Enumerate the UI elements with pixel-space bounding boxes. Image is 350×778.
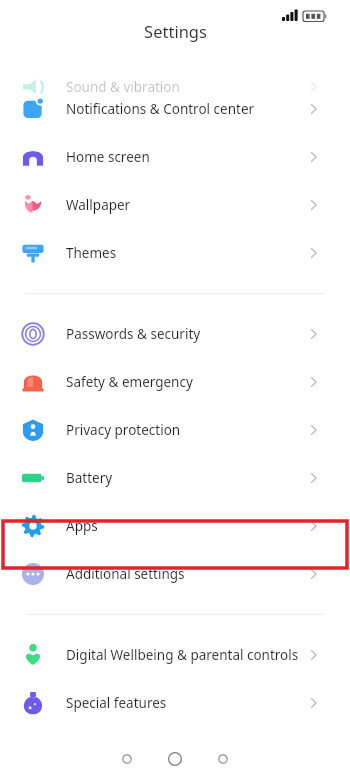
button[interactable]: Special features	[0, 679, 350, 727]
button[interactable]: Passwords & security	[0, 310, 350, 358]
staticText: Home screen	[66, 148, 150, 166]
button[interactable]: Recents	[213, 738, 350, 778]
button[interactable]: Privacy protection	[0, 406, 350, 454]
staticText: Settings	[144, 20, 207, 42]
button[interactable]: Digital Wellbeing & parental controls	[0, 631, 350, 679]
staticText: Safety & emergency	[66, 373, 193, 391]
button[interactable]: Home screen	[0, 133, 350, 181]
button[interactable]: Safety & emergency	[0, 358, 350, 406]
button[interactable]: Back	[0, 738, 137, 778]
staticText: Themes	[66, 244, 117, 262]
staticText: Battery	[66, 469, 113, 487]
staticText: Additional settings	[66, 565, 185, 583]
button[interactable]: Wallpaper	[0, 181, 350, 229]
button[interactable]: Battery	[0, 454, 350, 502]
button[interactable]: Additional settings	[0, 550, 350, 598]
staticText: Apps	[66, 517, 98, 535]
staticText: Notifications & Control center	[66, 100, 255, 118]
button[interactable]: Notifications & Control center	[0, 85, 350, 133]
staticText: Wallpaper	[66, 196, 131, 214]
staticText: Privacy protection	[66, 421, 181, 439]
staticText: Sound & vibration	[66, 78, 180, 96]
button[interactable]: Themes	[0, 229, 350, 277]
staticText: Special features	[66, 694, 167, 712]
staticText: Passwords & security	[66, 325, 201, 343]
button[interactable]: Apps	[0, 502, 350, 550]
staticText: Digital Wellbeing & parental controls	[66, 646, 299, 664]
button[interactable]: Home	[137, 738, 213, 778]
